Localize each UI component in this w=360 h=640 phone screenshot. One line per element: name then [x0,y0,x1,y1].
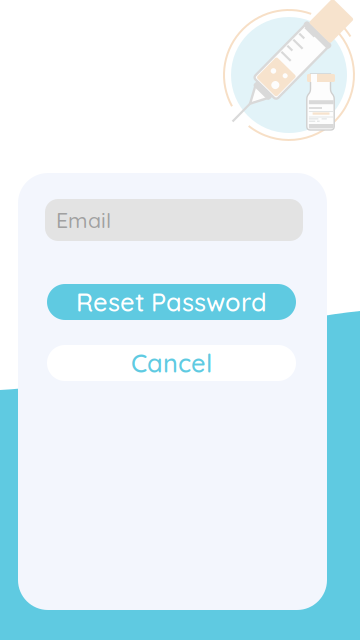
button[interactable]: Email [45,199,303,241]
button[interactable]: Cancel [47,345,296,381]
staticText: Email [56,207,111,233]
staticText: Cancel [131,347,212,379]
button[interactable]: Reset Password [47,284,296,320]
staticText: Reset Password [76,286,267,318]
